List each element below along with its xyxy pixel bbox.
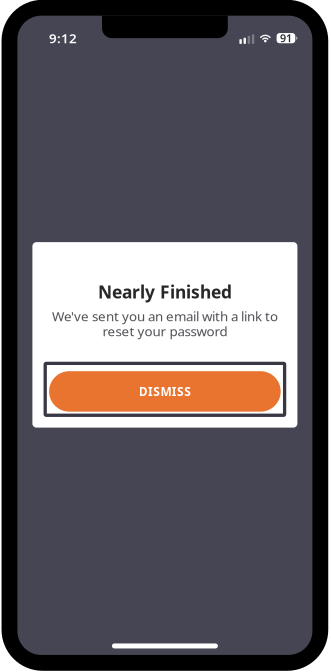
staticText: We've sent you an email with a link to	[52, 307, 278, 325]
staticText: DISMISS	[139, 383, 191, 399]
staticText: 9:12	[49, 29, 77, 47]
staticText: Nearly Finished	[98, 280, 232, 303]
button[interactable]: DISMISS	[32, 363, 297, 415]
staticText: reset your password	[102, 322, 227, 340]
staticText: 91	[280, 31, 292, 45]
